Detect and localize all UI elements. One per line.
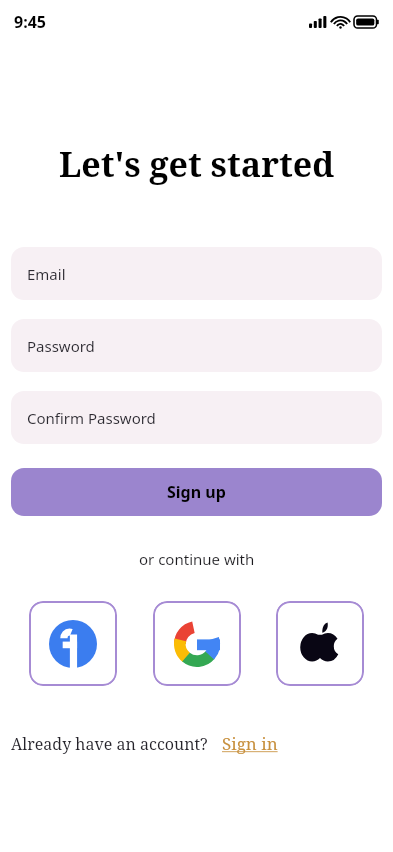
button[interactable]: Confirm Password bbox=[11, 391, 382, 444]
staticText: 9:45 bbox=[14, 11, 46, 33]
button[interactable]: Sign up bbox=[11, 468, 382, 516]
button[interactable]: Sign up with Apple bbox=[276, 601, 364, 686]
staticText: Password bbox=[27, 336, 95, 356]
staticText: Sign in bbox=[222, 732, 278, 755]
button[interactable]: Sign up with Google bbox=[153, 601, 241, 686]
button[interactable]: Email bbox=[11, 247, 382, 300]
staticText: Let's get started bbox=[59, 141, 335, 187]
staticText: Email bbox=[27, 264, 66, 284]
staticText: Already have an account? bbox=[11, 733, 208, 755]
button[interactable]: Sign in bbox=[222, 732, 278, 755]
staticText: Confirm Password bbox=[27, 408, 156, 428]
staticText: Sign up bbox=[167, 481, 226, 503]
button[interactable]: Password bbox=[11, 319, 382, 372]
staticText: or continue with bbox=[139, 549, 255, 569]
button[interactable]: Sign up with Facebook bbox=[29, 601, 117, 686]
